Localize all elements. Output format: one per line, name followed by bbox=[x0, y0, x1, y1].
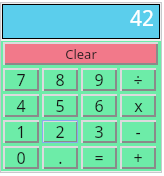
staticText: 4 bbox=[16, 95, 26, 114]
button[interactable]: ÷ bbox=[120, 68, 156, 91]
staticText: 6 bbox=[94, 95, 104, 114]
staticText: 2 bbox=[55, 121, 65, 140]
staticText: 1 bbox=[16, 121, 26, 140]
button[interactable]: . bbox=[42, 146, 78, 169]
button[interactable]: 6 bbox=[81, 94, 117, 117]
button[interactable]: 8 bbox=[42, 68, 78, 91]
staticText: 7 bbox=[16, 69, 26, 88]
staticText: 5 bbox=[55, 95, 65, 114]
staticText: = bbox=[94, 147, 104, 166]
button[interactable]: 5 bbox=[42, 94, 78, 117]
button[interactable]: 3 bbox=[81, 120, 117, 143]
staticText: 42 bbox=[130, 4, 155, 33]
button[interactable]: 2 bbox=[42, 120, 78, 143]
button[interactable]: x bbox=[120, 94, 156, 117]
button[interactable]: Display bbox=[2, 4, 160, 39]
button[interactable]: 9 bbox=[81, 68, 117, 91]
button[interactable]: - bbox=[120, 120, 156, 143]
button[interactable]: 0 bbox=[3, 146, 39, 169]
button[interactable]: = bbox=[81, 146, 117, 169]
staticText: 8 bbox=[55, 69, 65, 88]
staticText: Clear bbox=[65, 45, 97, 63]
staticText: x bbox=[134, 95, 143, 114]
staticText: + bbox=[133, 147, 143, 166]
staticText: ÷ bbox=[133, 69, 143, 88]
button[interactable]: + bbox=[120, 146, 156, 169]
staticText: . bbox=[58, 147, 63, 166]
staticText: 3 bbox=[94, 121, 104, 140]
staticText: 9 bbox=[94, 69, 104, 88]
button[interactable]: 7 bbox=[3, 68, 39, 91]
button[interactable]: 1 bbox=[3, 120, 39, 143]
button[interactable]: 4 bbox=[3, 94, 39, 117]
staticText: - bbox=[135, 121, 141, 140]
button[interactable]: Clear bbox=[3, 42, 158, 65]
staticText: 0 bbox=[16, 147, 26, 166]
